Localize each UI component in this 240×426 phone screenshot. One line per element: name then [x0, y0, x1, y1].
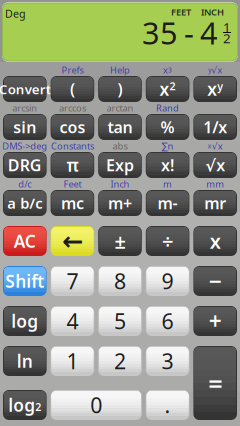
staticText: Rand	[156, 102, 179, 114]
staticText: 4	[66, 307, 78, 335]
button[interactable]: log	[3, 306, 47, 336]
button[interactable]: AC	[3, 226, 47, 256]
staticText: Exp	[106, 154, 134, 176]
staticText: )	[117, 78, 122, 100]
staticText: DRG	[8, 154, 42, 176]
button[interactable]: cos	[51, 114, 94, 140]
button[interactable]: Plus minus	[98, 226, 142, 256]
button[interactable]: π	[51, 152, 94, 178]
button[interactable]: ln	[3, 346, 47, 376]
button[interactable]: DRG	[3, 152, 47, 178]
staticText: 2	[223, 29, 231, 47]
staticText: arcsin	[12, 102, 37, 114]
staticText: √x	[205, 154, 225, 176]
button[interactable]: 9	[146, 266, 189, 296]
button[interactable]: 2	[98, 346, 142, 376]
staticText: -	[184, 12, 194, 53]
button[interactable]: m-	[146, 190, 189, 216]
staticText: Prefs	[61, 64, 83, 76]
staticText: 2	[114, 347, 126, 375]
button[interactable]: x to the y	[193, 76, 237, 102]
staticText: 3	[162, 347, 174, 375]
button[interactable]: a b/c	[3, 190, 47, 216]
staticText: 1	[223, 18, 231, 36]
button[interactable]: 6	[146, 306, 189, 336]
staticText: 3	[168, 65, 172, 74]
staticText: ÷	[162, 228, 173, 254]
button[interactable]: 7	[51, 266, 94, 296]
staticText: m+	[108, 192, 132, 214]
staticText: log	[11, 309, 38, 332]
button[interactable]: 1/x	[193, 114, 237, 140]
button[interactable]: log base 2	[3, 390, 47, 420]
staticText: INCH	[201, 6, 224, 18]
staticText: x	[163, 64, 168, 76]
staticText: +	[209, 306, 222, 336]
button[interactable]: m+	[98, 190, 142, 216]
button[interactable]: )	[98, 76, 142, 102]
staticText: Deg	[5, 6, 26, 21]
staticText: Help	[110, 64, 130, 76]
staticText: x	[210, 228, 221, 254]
staticText: log	[8, 393, 35, 416]
staticText: mc	[61, 192, 84, 214]
staticText: .	[165, 391, 171, 419]
staticText: 5	[114, 307, 126, 335]
staticText: Convert	[0, 80, 51, 98]
button[interactable]: (	[51, 76, 94, 102]
button[interactable]: 4	[51, 306, 94, 336]
button[interactable]: Backspace	[51, 226, 94, 256]
button[interactable]: x!	[146, 152, 189, 178]
button[interactable]: 3	[146, 346, 189, 376]
staticText: −	[209, 266, 222, 296]
staticText: mr	[204, 192, 226, 214]
button[interactable]: 8	[98, 266, 142, 296]
button[interactable]: tan	[98, 114, 142, 140]
staticText: abs	[112, 140, 127, 152]
staticText: 4	[200, 12, 218, 53]
button[interactable]: Exp	[98, 152, 142, 178]
staticText: 9	[162, 267, 174, 295]
staticText: m-	[158, 192, 178, 214]
staticText: 8	[114, 267, 126, 295]
button[interactable]: mr	[193, 190, 237, 216]
staticText: y	[208, 65, 211, 74]
button[interactable]: mc	[51, 190, 94, 216]
button[interactable]: Plus	[193, 306, 237, 336]
button[interactable]: Shift	[3, 266, 47, 296]
staticText: %	[161, 116, 175, 138]
staticText: π	[66, 153, 78, 176]
staticText: 1/x	[203, 116, 227, 138]
staticText: x	[207, 77, 217, 100]
staticText: x!	[161, 154, 174, 176]
staticText: Shift	[5, 269, 44, 292]
staticText: AC	[14, 229, 36, 252]
staticText: cos	[59, 116, 85, 138]
button[interactable]: Divide	[146, 226, 189, 256]
button[interactable]: Equals	[193, 346, 237, 420]
button[interactable]: Minus	[193, 266, 237, 296]
button[interactable]: %	[146, 114, 189, 140]
button[interactable]: 5	[98, 306, 142, 336]
staticText: ←	[62, 227, 83, 255]
staticText: arccos	[59, 102, 86, 114]
staticText: Inch	[110, 178, 129, 190]
staticText: √x	[212, 140, 223, 152]
staticText: a b/c	[7, 193, 42, 213]
button[interactable]: .	[146, 390, 189, 420]
button[interactable]: sin	[3, 114, 47, 140]
button[interactable]: 0	[51, 390, 142, 420]
button[interactable]: x squared	[146, 76, 189, 102]
button[interactable]: Convert	[3, 76, 47, 102]
staticText: 7	[66, 267, 78, 295]
button[interactable]: 1	[51, 346, 94, 376]
button[interactable]: √x	[193, 152, 237, 178]
staticText: 1	[66, 347, 78, 375]
button[interactable]: Multiply	[193, 226, 237, 256]
staticText: 0	[90, 391, 102, 419]
staticText: 6	[162, 307, 174, 335]
staticText: 35	[142, 12, 178, 53]
staticText: sin	[13, 116, 36, 138]
staticText: (	[70, 78, 75, 100]
staticText: x	[160, 77, 170, 100]
